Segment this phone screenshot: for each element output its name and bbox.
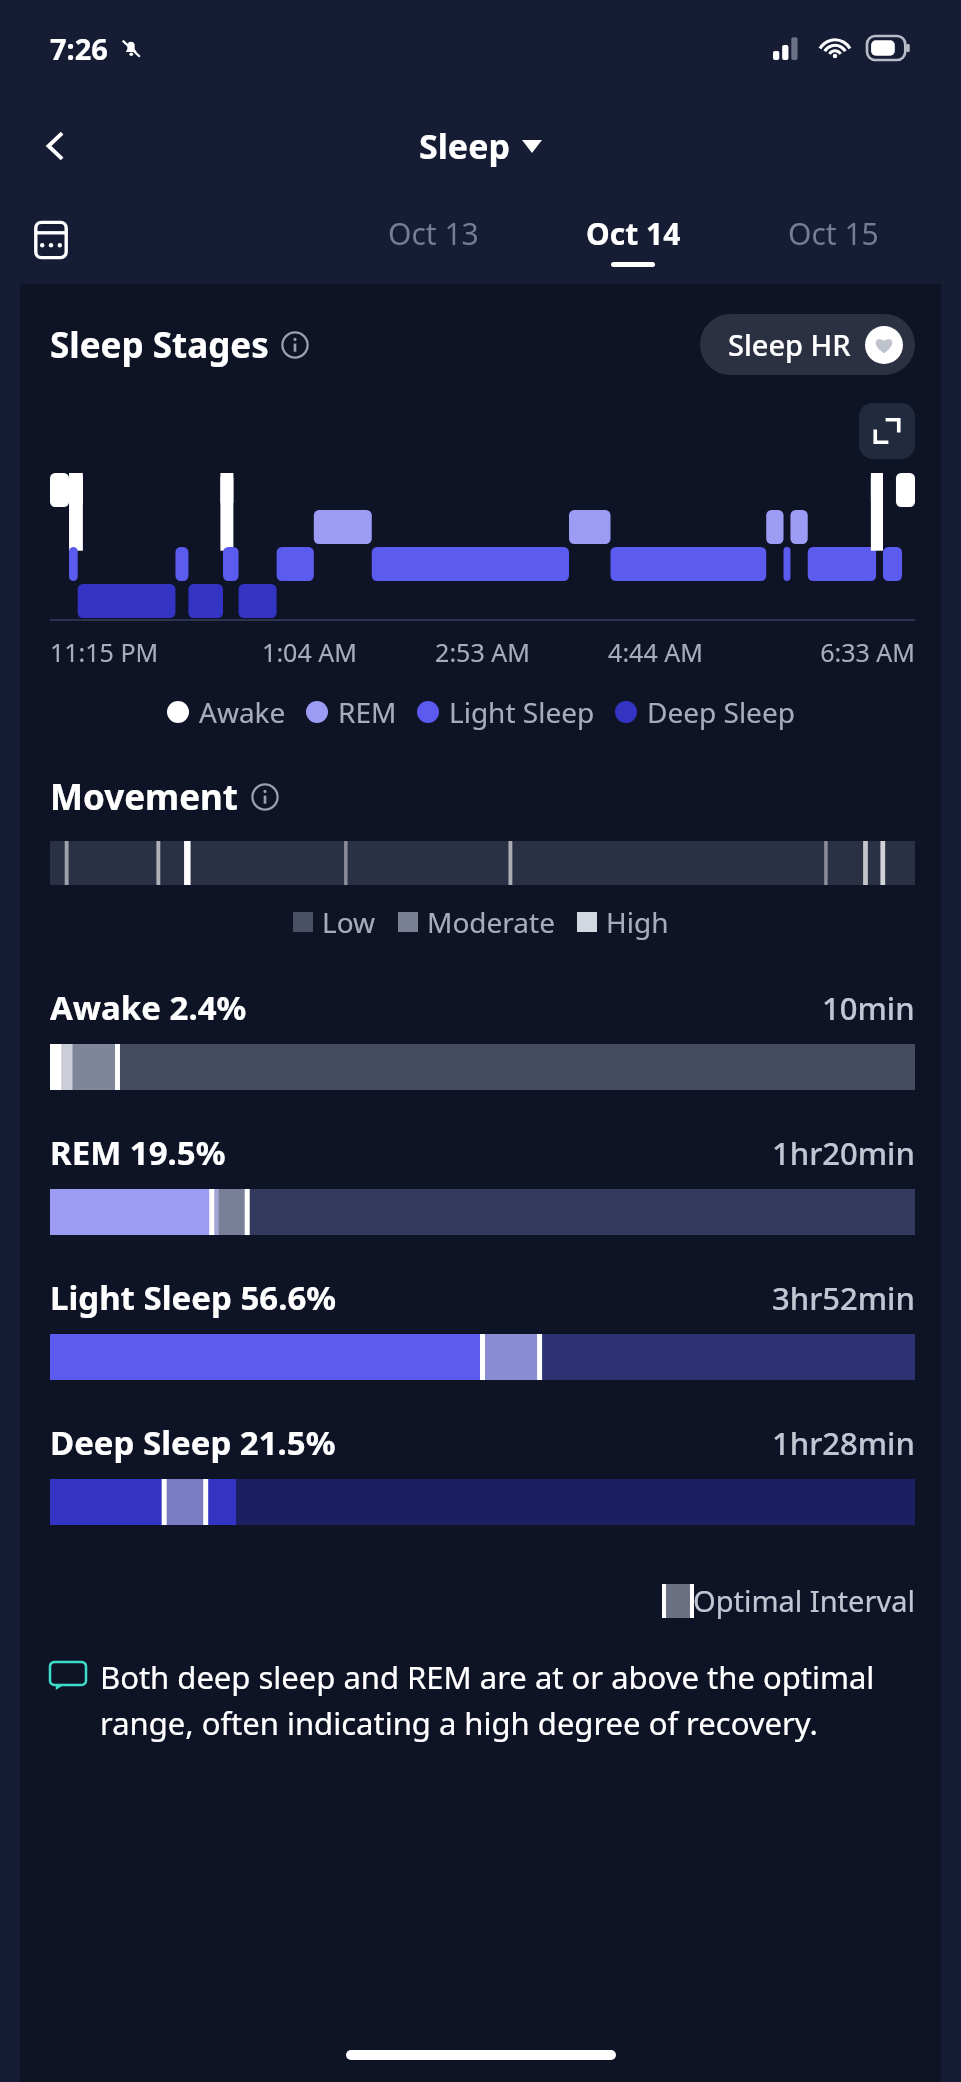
staticText: 6:33 AM [742, 635, 915, 669]
staticText: Sleep Stages [50, 321, 269, 369]
button[interactable]: Oct 14 [533, 196, 733, 284]
button[interactable]: Sleep [419, 123, 542, 169]
staticText: Oct 14 [586, 213, 681, 254]
button[interactable]: Calendar [22, 211, 80, 269]
staticText: High [606, 903, 669, 941]
staticText: 10min [822, 987, 915, 1029]
staticText: Low [322, 903, 376, 941]
staticText: REM 19.5% [50, 1130, 226, 1175]
staticText: REM [338, 693, 397, 731]
staticText: Sleep HR [728, 325, 851, 364]
button[interactable]: Sleep HR [700, 314, 915, 375]
staticText: Light Sleep 56.6% [50, 1275, 337, 1320]
staticText: Deep Sleep 21.5% [50, 1420, 336, 1465]
staticText: Sleep [419, 123, 510, 169]
staticText: Moderate [427, 903, 555, 941]
staticText: 1hr20min [772, 1132, 915, 1174]
staticText: Movement [50, 773, 239, 821]
button[interactable]: Expand chart [859, 403, 915, 459]
staticText: 2:53 AM [396, 635, 569, 669]
button[interactable]: Oct 15 [733, 196, 933, 284]
staticText: Awake 2.4% [50, 985, 247, 1030]
staticText: Awake [199, 693, 286, 731]
staticText: 1hr28min [772, 1422, 915, 1464]
staticText: Oct 15 [788, 213, 879, 254]
staticText: Oct 13 [388, 213, 479, 254]
staticText: Light Sleep [449, 693, 595, 731]
staticText: Deep Sleep [647, 693, 795, 731]
staticText: 4:44 AM [569, 635, 742, 669]
staticText: 1:04 AM [223, 635, 396, 669]
staticText: 7:26 [50, 29, 108, 68]
staticText: Optimal Interval [693, 1581, 915, 1620]
button[interactable]: Oct 13 [333, 196, 533, 284]
button[interactable]: Back [26, 116, 86, 176]
staticText: Both deep sleep and REM are at or above … [100, 1656, 911, 1744]
staticText: 11:15 PM [50, 635, 223, 669]
staticText: 3hr52min [772, 1277, 915, 1319]
